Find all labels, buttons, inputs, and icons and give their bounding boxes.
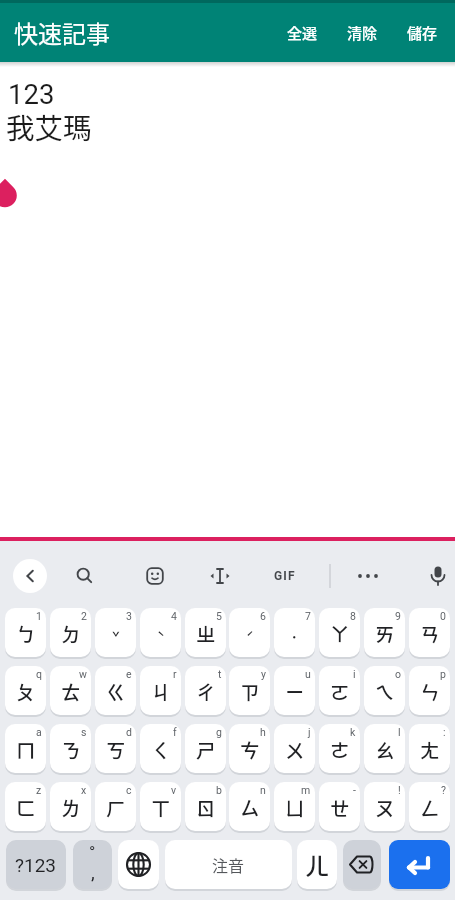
staticText: 我艾瑪 xyxy=(6,106,92,147)
button[interactable] xyxy=(418,556,455,596)
button[interactable]: ㄏ xyxy=(95,782,136,831)
button[interactable]: ㄍ xyxy=(95,666,136,715)
button[interactable]: ㄎ xyxy=(95,724,136,773)
staticText: 7 xyxy=(305,610,311,622)
staticText: ㄝ xyxy=(330,793,350,821)
staticText: p xyxy=(440,668,446,680)
button[interactable]: ㄑ xyxy=(140,724,181,773)
staticText: 4 xyxy=(171,610,177,622)
staticText: 9 xyxy=(395,610,401,622)
button[interactable]: ㄌ xyxy=(50,782,91,831)
staticText: ㄣ xyxy=(420,677,440,705)
button[interactable]: ㄛ xyxy=(319,666,360,715)
button[interactable]: ㄗ xyxy=(229,666,270,715)
staticText: 5 xyxy=(216,610,222,622)
button[interactable]: ㄈ xyxy=(5,782,46,831)
button[interactable]: ㄟ xyxy=(364,666,405,715)
button[interactable]: ㄓ xyxy=(185,608,226,657)
staticText: ㄨ xyxy=(285,735,305,763)
staticText: ㄘ xyxy=(240,735,260,763)
button[interactable] xyxy=(343,840,381,889)
staticText: j xyxy=(308,726,311,738)
button[interactable]: ㄨ xyxy=(274,724,315,773)
staticText: ㄞ xyxy=(375,619,395,647)
staticText: ㄅ xyxy=(16,619,36,647)
button[interactable]: ㄖ xyxy=(185,782,226,831)
staticText: ㄆ xyxy=(16,677,36,705)
button[interactable]: ㄉ xyxy=(50,608,91,657)
button[interactable] xyxy=(10,556,50,596)
staticText: k xyxy=(350,726,356,738)
button[interactable] xyxy=(389,840,450,889)
staticText: ? xyxy=(441,784,446,796)
staticText: ㄌ xyxy=(61,793,81,821)
button[interactable]: ㄩ xyxy=(274,782,315,831)
button[interactable]: ㄜ xyxy=(319,724,360,773)
staticText: GIF xyxy=(274,569,296,583)
staticText: ㄇ xyxy=(16,735,36,763)
button[interactable] xyxy=(165,840,292,889)
button[interactable]: ㄣ xyxy=(409,666,450,715)
button[interactable]: ㄚ xyxy=(319,608,360,657)
button[interactable]: 儲存 xyxy=(407,22,438,44)
staticText: ! xyxy=(398,784,401,796)
button[interactable]: ㄢ xyxy=(409,608,450,657)
button[interactable]: ㄧ xyxy=(274,666,315,715)
staticText: z xyxy=(36,784,42,796)
button[interactable]: ㄙ xyxy=(229,782,270,831)
button[interactable]: ㄠ xyxy=(364,724,405,773)
button[interactable]: ㄕ xyxy=(185,724,226,773)
button[interactable]: 全選 xyxy=(287,22,318,44)
button[interactable]: ㄦ xyxy=(297,840,337,889)
button[interactable] xyxy=(6,840,66,889)
staticText: v xyxy=(171,784,177,796)
staticText: , xyxy=(91,861,95,883)
button[interactable] xyxy=(65,556,105,596)
button[interactable] xyxy=(118,840,159,889)
button[interactable]: ㄞ xyxy=(364,608,405,657)
staticText: ㄎ xyxy=(106,735,126,763)
staticText: g xyxy=(216,726,222,738)
staticText: b xyxy=(216,784,222,796)
staticText: ㄔ xyxy=(196,677,216,705)
button[interactable]: 清除 xyxy=(347,22,378,44)
button[interactable]: ㄐ xyxy=(140,666,181,715)
staticText: f xyxy=(173,726,177,738)
staticText: : xyxy=(443,726,446,738)
button[interactable]: ˙ xyxy=(274,608,315,657)
button[interactable]: ㄤ xyxy=(409,724,450,773)
staticText: ㄟ xyxy=(375,677,395,705)
button[interactable]: ˊ xyxy=(229,608,270,657)
button[interactable] xyxy=(348,556,388,596)
button[interactable]: ㄆ xyxy=(5,666,46,715)
staticText: i xyxy=(353,668,356,680)
staticText: 儲存 xyxy=(407,22,438,44)
button[interactable] xyxy=(73,840,112,889)
button[interactable] xyxy=(135,556,175,596)
staticText: 1 xyxy=(36,610,42,622)
button[interactable]: ㄔ xyxy=(185,666,226,715)
button[interactable]: ㄋ xyxy=(50,724,91,773)
staticText: d xyxy=(126,726,132,738)
staticText: ㄠ xyxy=(375,735,395,763)
staticText: ˋ xyxy=(157,627,165,646)
staticText: ㄓ xyxy=(196,619,216,647)
button[interactable] xyxy=(265,556,305,596)
button[interactable]: ㄊ xyxy=(50,666,91,715)
staticText: ˊ xyxy=(246,627,254,646)
button[interactable]: ㄝ xyxy=(319,782,360,831)
button[interactable]: ㄇ xyxy=(5,724,46,773)
button[interactable]: ㄥ xyxy=(409,782,450,831)
staticText: ㄡ xyxy=(375,793,395,821)
button[interactable]: ㄘ xyxy=(229,724,270,773)
button[interactable]: ㄒ xyxy=(140,782,181,831)
button[interactable]: ㄅ xyxy=(5,608,46,657)
button[interactable] xyxy=(200,556,240,596)
staticText: ㄜ xyxy=(330,735,350,763)
staticText: 快速記事 xyxy=(14,15,110,50)
button[interactable]: ˋ xyxy=(140,608,181,657)
staticText: ㄗ xyxy=(240,677,260,705)
button[interactable]: ㄡ xyxy=(364,782,405,831)
staticText: 全選 xyxy=(287,22,318,44)
button[interactable]: ˇ xyxy=(95,608,136,657)
